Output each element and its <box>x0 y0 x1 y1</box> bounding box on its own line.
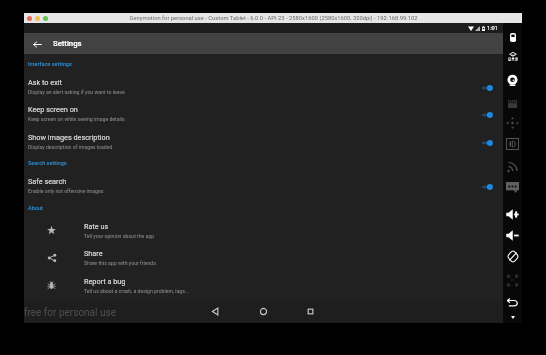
button[interactable]: Gps <box>503 48 522 66</box>
button[interactable]: VolUp <box>503 205 522 223</box>
button[interactable]: Id <box>503 135 522 153</box>
button[interactable]: Keys <box>503 271 522 289</box>
staticText: Interface settings <box>28 61 72 68</box>
staticText: free for personal use <box>24 307 116 319</box>
staticText: Genymotion for personal use - Custom Tab… <box>129 15 418 22</box>
button[interactable]: Caret <box>503 308 522 326</box>
button[interactable]: Report a bug <box>24 276 503 301</box>
staticText: Keep screen on <box>28 105 78 114</box>
button[interactable]: Recent apps <box>301 300 319 323</box>
staticText: Show images description <box>28 133 110 142</box>
staticText: Safe search <box>28 177 67 186</box>
staticText: Share this app with your friends <box>84 260 156 266</box>
button[interactable]: Battery <box>503 28 522 46</box>
staticText: Share <box>84 249 103 258</box>
button[interactable]: VolDown <box>503 226 522 244</box>
staticText: Rate us <box>84 222 109 231</box>
staticText: Display description of images loaded <box>28 144 113 150</box>
button[interactable]: Safe search <box>24 176 503 200</box>
button[interactable]: Clapper <box>503 95 522 113</box>
button[interactable]: BackArr <box>503 293 522 311</box>
button[interactable]: Keep screen on <box>24 104 503 128</box>
button[interactable]: Share <box>24 248 503 273</box>
staticText: Keep screen on while seeing image detail… <box>28 116 125 122</box>
staticText: Tell us about a crash, a design problem,… <box>84 288 189 294</box>
button[interactable]: Ask to exit <box>24 77 503 101</box>
button[interactable]: Camera <box>503 71 522 89</box>
button[interactable]: Sms <box>503 178 522 196</box>
staticText: Search settings <box>28 160 67 167</box>
staticText: Enable only not offensive images <box>28 188 104 194</box>
button[interactable]: Navigate up <box>29 36 45 52</box>
staticText: Ask to exit <box>28 78 62 87</box>
staticText: 1:01 <box>487 25 498 32</box>
button[interactable]: Wifi <box>503 157 522 175</box>
button[interactable]: Rotate <box>503 247 522 265</box>
button[interactable]: Move <box>503 114 522 132</box>
staticText: Tell your opinion about the app <box>84 233 155 239</box>
button[interactable]: Rate us <box>24 221 503 246</box>
staticText: Report a bug <box>84 277 126 286</box>
button[interactable]: Back <box>206 300 224 323</box>
staticText: About <box>28 205 43 212</box>
button[interactable]: Show images description <box>24 132 503 156</box>
staticText: Display an alert asking if you want to l… <box>28 89 125 95</box>
staticText: Settings <box>53 39 82 48</box>
button[interactable]: Home <box>254 300 272 323</box>
